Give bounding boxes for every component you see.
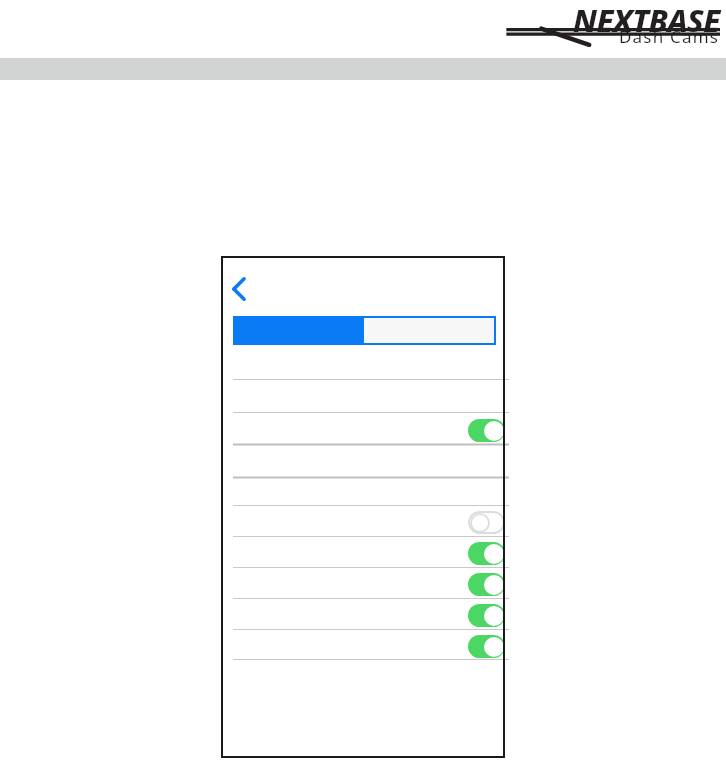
button[interactable]: Setting on [229, 538, 513, 569]
button[interactable]: Second tab [364, 316, 496, 345]
button[interactable]: Setting off [468, 511, 505, 534]
button[interactable] [229, 381, 513, 414]
button[interactable]: Setting on [229, 600, 513, 631]
button[interactable] [229, 479, 513, 507]
button[interactable]: Setting off [229, 507, 513, 538]
button[interactable]: Setting on [468, 604, 505, 627]
staticText: NEXTBASE [573, 0, 720, 41]
button[interactable]: Setting on [468, 419, 505, 442]
button[interactable]: Setting on [468, 573, 505, 596]
button[interactable]: Setting on [229, 414, 513, 446]
button[interactable]: Setting on [468, 635, 505, 658]
button[interactable] [229, 356, 513, 381]
button[interactable]: First tab, selected [233, 316, 365, 345]
staticText: Dash Cams [619, 25, 720, 48]
button[interactable]: Setting on [229, 631, 513, 661]
button[interactable] [229, 446, 513, 479]
button[interactable]: Setting on [229, 569, 513, 600]
button[interactable]: Back [223, 272, 257, 306]
button[interactable]: Setting on [468, 542, 505, 565]
